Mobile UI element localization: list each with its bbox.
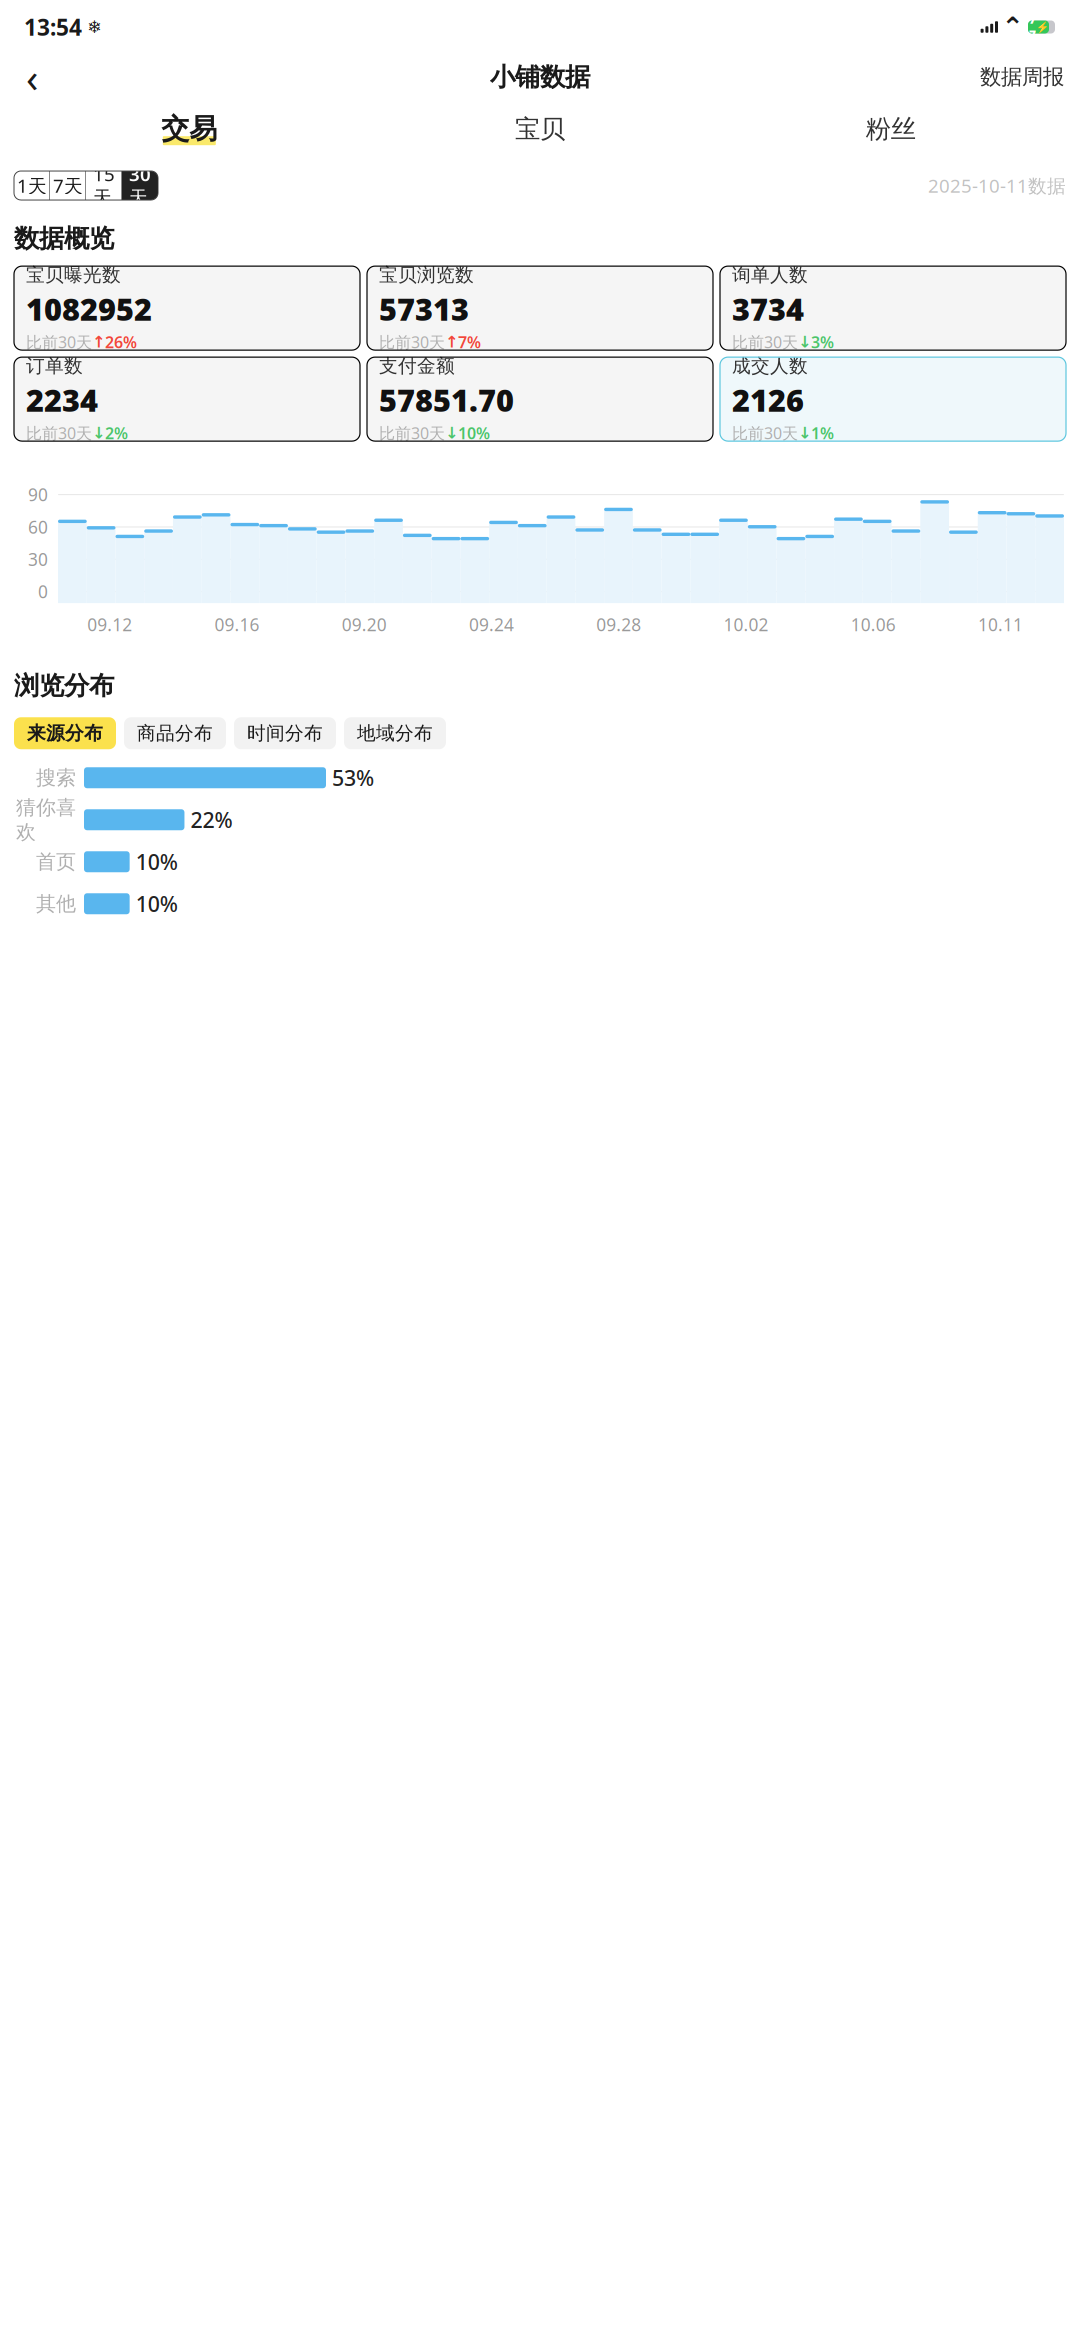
staticText: 粉丝: [866, 113, 916, 144]
staticText: 09.24: [469, 613, 514, 636]
staticText: 搜索: [36, 765, 76, 790]
staticText: 比前30天: [26, 331, 92, 352]
staticText: ⚡: [1036, 21, 1049, 33]
staticText: ↑: [445, 333, 458, 351]
staticText: 时间分布: [247, 722, 323, 745]
button[interactable]: 数据周报: [974, 55, 1070, 99]
staticText: ❄: [87, 17, 102, 37]
button[interactable]: 地域分布: [344, 717, 446, 749]
staticText: 2234: [26, 380, 98, 420]
staticText: 0: [38, 580, 48, 603]
staticText: 猜你喜欢: [16, 795, 76, 844]
staticText: 10%: [136, 848, 178, 876]
button[interactable]: 成交人数: [720, 357, 1066, 441]
staticText: 7天: [53, 173, 83, 198]
staticText: 09.16: [214, 613, 259, 636]
staticText: 交易: [161, 112, 217, 146]
staticText: 比前30天: [379, 422, 445, 443]
staticText: 57313: [379, 289, 469, 329]
staticText: 15天: [93, 162, 115, 209]
staticText: 宝贝: [515, 113, 565, 144]
staticText: 7%: [458, 331, 481, 352]
staticText: 比前30天: [732, 422, 798, 443]
staticText: 60: [28, 515, 48, 538]
staticText: 09.20: [342, 613, 387, 636]
staticText: 数据周报: [980, 64, 1064, 90]
staticText: 宝贝曝光数: [26, 264, 121, 287]
button[interactable]: 询单人数: [720, 266, 1066, 350]
staticText: 商品分布: [137, 722, 213, 745]
staticText: ↓: [445, 424, 458, 442]
button[interactable]: 粉丝: [715, 106, 1066, 152]
staticText: 小铺数据: [490, 61, 590, 92]
staticText: 比前30天: [26, 422, 92, 443]
staticText: 订单数: [26, 355, 83, 378]
button[interactable]: 宝贝: [365, 106, 715, 152]
staticText: 数据概览: [14, 223, 114, 254]
staticText: 30天: [129, 162, 151, 209]
staticText: 宝贝浏览数: [379, 264, 474, 287]
staticText: 2%: [105, 422, 128, 443]
staticText: 浏览分布: [14, 670, 114, 701]
staticText: 57851.70: [379, 380, 514, 420]
staticText: 10.06: [851, 613, 896, 636]
staticText: 2025-10-11数据: [928, 173, 1066, 198]
staticText: 30: [28, 548, 48, 571]
staticText: 90: [28, 483, 48, 506]
button[interactable]: 订单数: [14, 357, 360, 441]
button[interactable]: 7天: [50, 171, 86, 200]
button[interactable]: 30天: [122, 171, 158, 200]
button[interactable]: 支付金额: [367, 357, 713, 441]
staticText: 10%: [136, 890, 178, 918]
staticText: ↓: [798, 424, 811, 442]
staticText: 26%: [105, 331, 137, 352]
staticText: 10.11: [978, 613, 1023, 636]
button[interactable]: 交易: [14, 106, 365, 152]
button[interactable]: 商品分布: [124, 717, 226, 749]
button[interactable]: 1天: [14, 171, 50, 200]
staticText: 3734: [732, 289, 804, 329]
staticText: 22%: [190, 806, 232, 834]
staticText: 其他: [36, 891, 76, 916]
staticText: ‹: [26, 50, 38, 103]
staticText: 比前30天: [379, 331, 445, 352]
staticText: ↑: [92, 333, 105, 351]
staticText: 53%: [332, 764, 374, 792]
staticText: 1天: [17, 173, 47, 198]
staticText: 询单人数: [732, 264, 808, 287]
staticText: ↓: [798, 333, 811, 351]
staticText: 支付金额: [379, 355, 455, 378]
staticText: 09.12: [87, 613, 132, 636]
staticText: 1%: [811, 422, 834, 443]
staticText: 10.02: [723, 613, 768, 636]
button[interactable]: 宝贝曝光数: [14, 266, 360, 350]
staticText: 09.28: [596, 613, 641, 636]
button[interactable]: 返回: [10, 55, 54, 99]
button[interactable]: 15天: [86, 171, 122, 200]
staticText: 1082952: [26, 289, 152, 329]
staticText: 77: [1029, 11, 1036, 43]
staticText: 地域分布: [357, 722, 433, 745]
staticText: ↓: [92, 424, 105, 442]
staticText: 首页: [36, 849, 76, 874]
staticText: 成交人数: [732, 355, 808, 378]
button[interactable]: 来源分布: [14, 717, 116, 749]
staticText: 2126: [732, 380, 804, 420]
staticText: 13:54: [24, 12, 82, 42]
staticText: 比前30天: [732, 331, 798, 352]
button[interactable]: 宝贝浏览数: [367, 266, 713, 350]
staticText: 3%: [811, 331, 834, 352]
staticText: ⌃: [1001, 12, 1023, 42]
staticText: 10%: [458, 422, 490, 443]
button[interactable]: 时间分布: [234, 717, 336, 749]
staticText: 来源分布: [27, 722, 103, 745]
